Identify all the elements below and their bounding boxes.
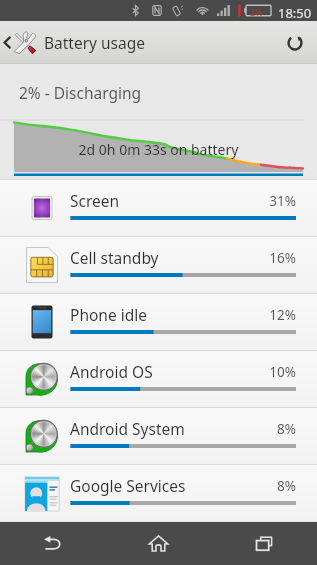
button[interactable]: Phone idle	[0, 294, 317, 350]
staticText: Android System	[70, 418, 185, 439]
button[interactable]: Cell standby	[0, 237, 317, 293]
button[interactable]: Refresh	[273, 21, 317, 64]
staticText: Battery usage	[44, 32, 146, 53]
button[interactable]: Android OS	[0, 351, 317, 407]
staticText: 8%	[0, 420, 296, 438]
staticText: 2%	[250, 6, 263, 18]
staticText: Cell standby	[70, 247, 159, 268]
staticText: 10%	[0, 363, 296, 381]
staticText: 31%	[0, 192, 296, 210]
staticText: 2% - Discharging	[19, 82, 142, 103]
button[interactable]: Screen	[0, 180, 317, 236]
staticText: 16%	[0, 249, 296, 267]
button[interactable]: Recents	[211, 522, 317, 565]
staticText: 18:50	[278, 4, 312, 22]
button[interactable]: Home	[105, 522, 211, 565]
button[interactable]: Back	[0, 522, 105, 565]
staticText: Google Services	[70, 475, 186, 496]
staticText: 12%	[0, 306, 296, 324]
staticText: Phone idle	[70, 304, 147, 325]
button[interactable]: Google Services	[0, 465, 317, 521]
staticText: Screen	[70, 190, 120, 211]
staticText: 8%	[0, 477, 296, 495]
staticText: 2d 0h 0m 33s on battery	[14, 140, 303, 159]
staticText: Android OS	[70, 361, 153, 382]
button[interactable]: Android System	[0, 408, 317, 464]
button[interactable]: Battery usage	[0, 21, 165, 64]
